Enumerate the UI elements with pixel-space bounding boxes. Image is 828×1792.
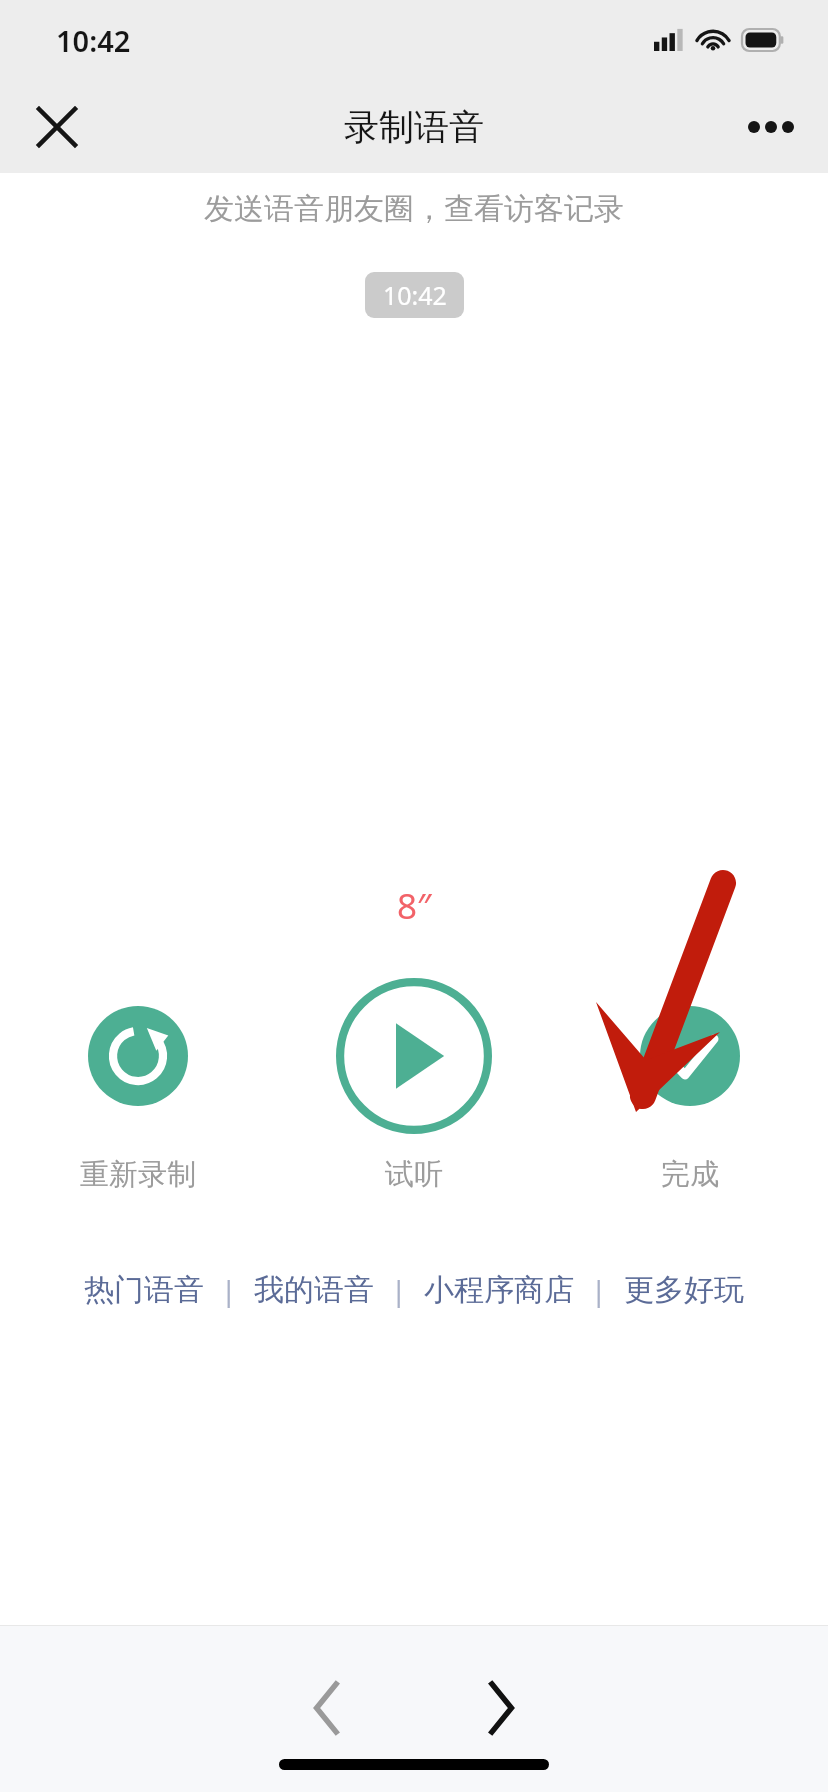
staticText: | [591, 1271, 607, 1309]
staticText: 热门语音 [84, 1271, 204, 1309]
button[interactable]: Back [280, 1661, 374, 1755]
staticText: 10:42 [56, 21, 131, 60]
staticText: 录制语音 [344, 105, 484, 149]
button[interactable]: 试听 [276, 978, 552, 1193]
staticText: 更多好玩 [624, 1271, 744, 1309]
staticText: 发送语音朋友圈，查看访客记录 [0, 190, 828, 228]
button[interactable]: 热门语音 [84, 1265, 204, 1315]
button[interactable]: Close [22, 92, 92, 162]
staticText: | [391, 1271, 407, 1309]
button[interactable]: Forward [454, 1661, 548, 1755]
button[interactable]: More options [736, 92, 806, 162]
staticText: 10:42 [383, 278, 447, 312]
button[interactable]: 我的语音 [254, 1265, 374, 1315]
staticText: 试听 [385, 1156, 443, 1193]
button[interactable]: 重新录制 [0, 978, 276, 1193]
staticText: 完成 [661, 1156, 719, 1193]
button[interactable]: 小程序商店 [424, 1265, 574, 1315]
staticText: 我的语音 [254, 1271, 374, 1309]
staticText: 小程序商店 [424, 1271, 574, 1309]
staticText: 重新录制 [80, 1156, 196, 1193]
staticText: 8″ [397, 882, 432, 930]
button[interactable]: 更多好玩 [624, 1265, 744, 1315]
staticText: | [221, 1271, 237, 1309]
button[interactable]: 完成 [552, 978, 828, 1193]
